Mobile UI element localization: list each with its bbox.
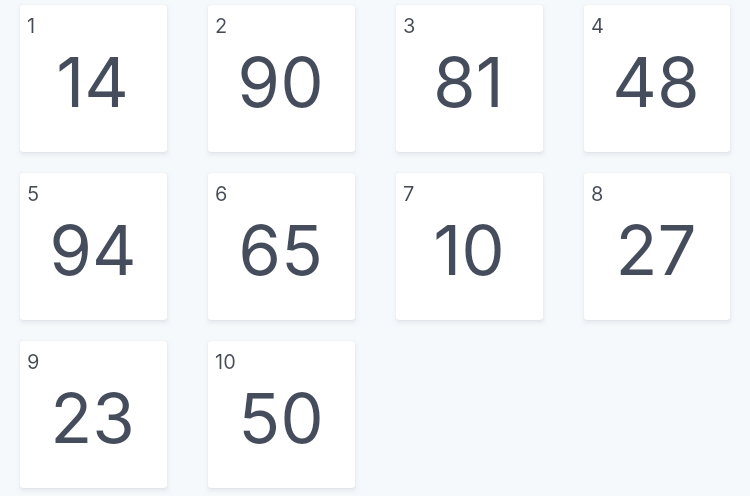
button[interactable]: 8 xyxy=(584,173,730,320)
staticText: 5 xyxy=(27,182,40,206)
staticText: 90 xyxy=(237,40,324,123)
staticText: 7 xyxy=(403,182,415,206)
staticText: 10 xyxy=(433,208,505,291)
staticText: 94 xyxy=(49,208,137,291)
button[interactable]: 7 xyxy=(396,173,543,320)
staticText: 9 xyxy=(27,350,40,374)
button[interactable]: 9 xyxy=(20,341,167,488)
button[interactable]: 2 xyxy=(208,5,355,152)
button[interactable]: 10 xyxy=(208,341,355,488)
staticText: 14 xyxy=(56,40,129,123)
button[interactable]: 3 xyxy=(396,5,543,152)
staticText: 1 xyxy=(27,14,36,38)
staticText: 81 xyxy=(433,40,504,123)
button[interactable]: 1 xyxy=(20,5,167,152)
staticText: 27 xyxy=(615,208,697,291)
staticText: 50 xyxy=(238,376,324,459)
staticText: 2 xyxy=(215,14,228,38)
staticText: 3 xyxy=(403,14,416,38)
staticText: 4 xyxy=(591,14,604,38)
staticText: 48 xyxy=(612,40,700,123)
staticText: 65 xyxy=(238,208,323,291)
button[interactable]: 6 xyxy=(208,173,355,320)
staticText: 6 xyxy=(215,182,228,206)
staticText: 8 xyxy=(591,182,604,206)
staticText: 23 xyxy=(50,376,135,459)
button[interactable]: 4 xyxy=(584,5,730,152)
button[interactable]: 5 xyxy=(20,173,167,320)
staticText: 10 xyxy=(215,350,236,374)
